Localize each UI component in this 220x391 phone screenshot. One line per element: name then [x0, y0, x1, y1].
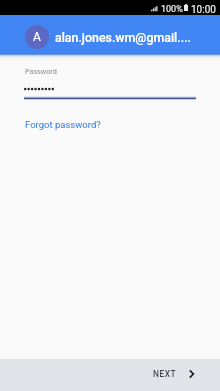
staticText: 100% — [161, 4, 183, 15]
button[interactable]: Forgot password? — [21, 116, 105, 133]
staticText: NEXT — [153, 369, 177, 379]
staticText: alan.jones.wm@gmail.... — [55, 30, 192, 45]
staticText: 10:00 — [191, 4, 216, 16]
other: Battery full — [184, 4, 188, 11]
staticText: Forgot password? — [25, 119, 101, 130]
button[interactable]: NEXT — [139, 365, 220, 385]
staticText: Password — [25, 67, 57, 75]
other: Signal strength — [151, 5, 158, 12]
button[interactable]: Password field — [24, 85, 56, 93]
staticText: A — [33, 30, 41, 44]
button[interactable]: A — [0, 15, 220, 54]
